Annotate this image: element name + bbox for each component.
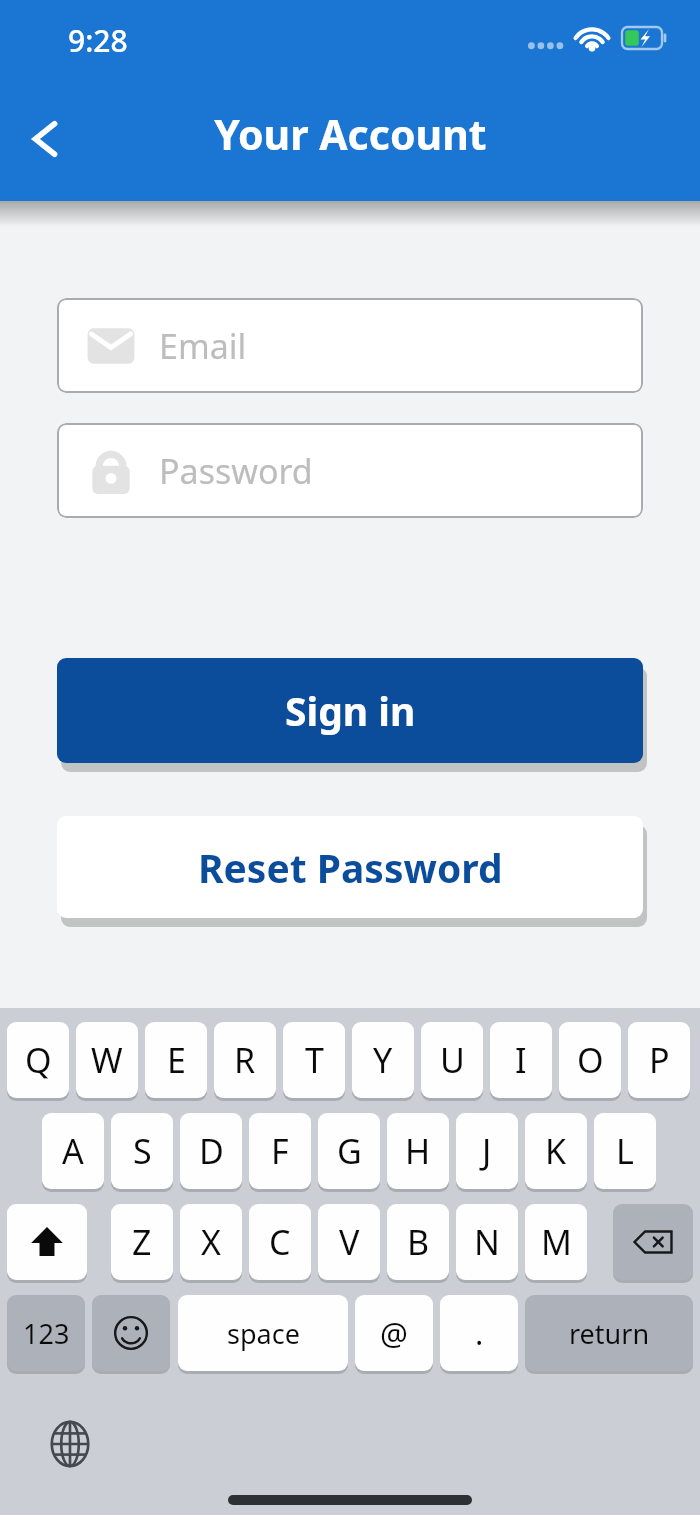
button[interactable]: E [145, 1022, 207, 1098]
button[interactable]: return [525, 1295, 693, 1371]
staticText: Reset Password [198, 841, 503, 894]
staticText: T [305, 1037, 324, 1083]
staticText: C [269, 1219, 291, 1265]
staticText: W [91, 1037, 123, 1083]
staticText: Z [132, 1219, 152, 1265]
button[interactable]: space [178, 1295, 348, 1371]
staticText: 9:28 [68, 20, 128, 61]
button[interactable]: G [318, 1113, 380, 1189]
staticText: . [475, 1312, 484, 1354]
staticText: N [474, 1219, 500, 1265]
button[interactable]: Backspace [613, 1204, 693, 1280]
button[interactable]: X [180, 1204, 242, 1280]
staticText: P [649, 1037, 670, 1083]
button[interactable]: . [440, 1295, 518, 1371]
staticText: Password [159, 448, 313, 494]
button[interactable]: Sign in [57, 658, 643, 763]
button[interactable]: U [421, 1022, 483, 1098]
staticText: H [405, 1128, 431, 1174]
staticText: R [234, 1037, 256, 1083]
staticText: Your Account [214, 106, 487, 162]
staticText: K [545, 1128, 567, 1174]
staticText: I [515, 1037, 527, 1083]
staticText: Sign in [285, 684, 416, 737]
staticText: space [227, 1315, 300, 1352]
button[interactable]: I [490, 1022, 552, 1098]
button[interactable]: V [318, 1204, 380, 1280]
button[interactable]: A [42, 1113, 104, 1189]
staticText: Y [373, 1037, 393, 1083]
button[interactable]: C [249, 1204, 311, 1280]
button[interactable]: R [214, 1022, 276, 1098]
button[interactable]: Z [111, 1204, 173, 1280]
button[interactable]: S [111, 1113, 173, 1189]
button[interactable]: Y [352, 1022, 414, 1098]
staticText: M [541, 1219, 572, 1265]
staticText: A [62, 1128, 84, 1174]
button[interactable]: Email [57, 298, 643, 393]
staticText: D [199, 1128, 224, 1174]
staticText: J [482, 1128, 492, 1174]
button[interactable]: M [525, 1204, 587, 1280]
button[interactable]: @ [355, 1295, 433, 1371]
button[interactable]: L [594, 1113, 656, 1189]
button[interactable]: N [456, 1204, 518, 1280]
staticText: U [440, 1037, 465, 1083]
button[interactable]: Q [7, 1022, 69, 1098]
button[interactable]: Reset Password [57, 816, 643, 918]
button[interactable]: Shift [7, 1204, 87, 1280]
staticText: E [167, 1037, 186, 1083]
staticText: X [201, 1219, 221, 1265]
button[interactable]: W [76, 1022, 138, 1098]
staticText: B [407, 1219, 430, 1265]
staticText: V [339, 1219, 360, 1265]
button[interactable]: H [387, 1113, 449, 1189]
staticText: S [133, 1128, 152, 1174]
button[interactable]: J [456, 1113, 518, 1189]
button[interactable]: P [628, 1022, 690, 1098]
button[interactable]: T [283, 1022, 345, 1098]
staticText: O [577, 1037, 604, 1083]
button[interactable]: Back [8, 102, 82, 176]
button[interactable]: D [180, 1113, 242, 1189]
button[interactable]: K [525, 1113, 587, 1189]
button[interactable]: Switch keyboard [36, 1410, 104, 1478]
staticText: Q [25, 1037, 52, 1083]
button[interactable]: B [387, 1204, 449, 1280]
staticText: @ [380, 1312, 408, 1354]
button[interactable]: O [559, 1022, 621, 1098]
staticText: G [337, 1128, 362, 1174]
button[interactable]: Emoji [92, 1295, 170, 1371]
button[interactable]: F [249, 1113, 311, 1189]
staticText: Email [159, 323, 247, 369]
staticText: return [569, 1315, 650, 1352]
button[interactable]: Password [57, 423, 643, 518]
staticText: 123 [23, 1315, 70, 1352]
staticText: L [616, 1128, 634, 1174]
button[interactable]: 123 [7, 1295, 85, 1371]
staticText: F [271, 1128, 289, 1174]
